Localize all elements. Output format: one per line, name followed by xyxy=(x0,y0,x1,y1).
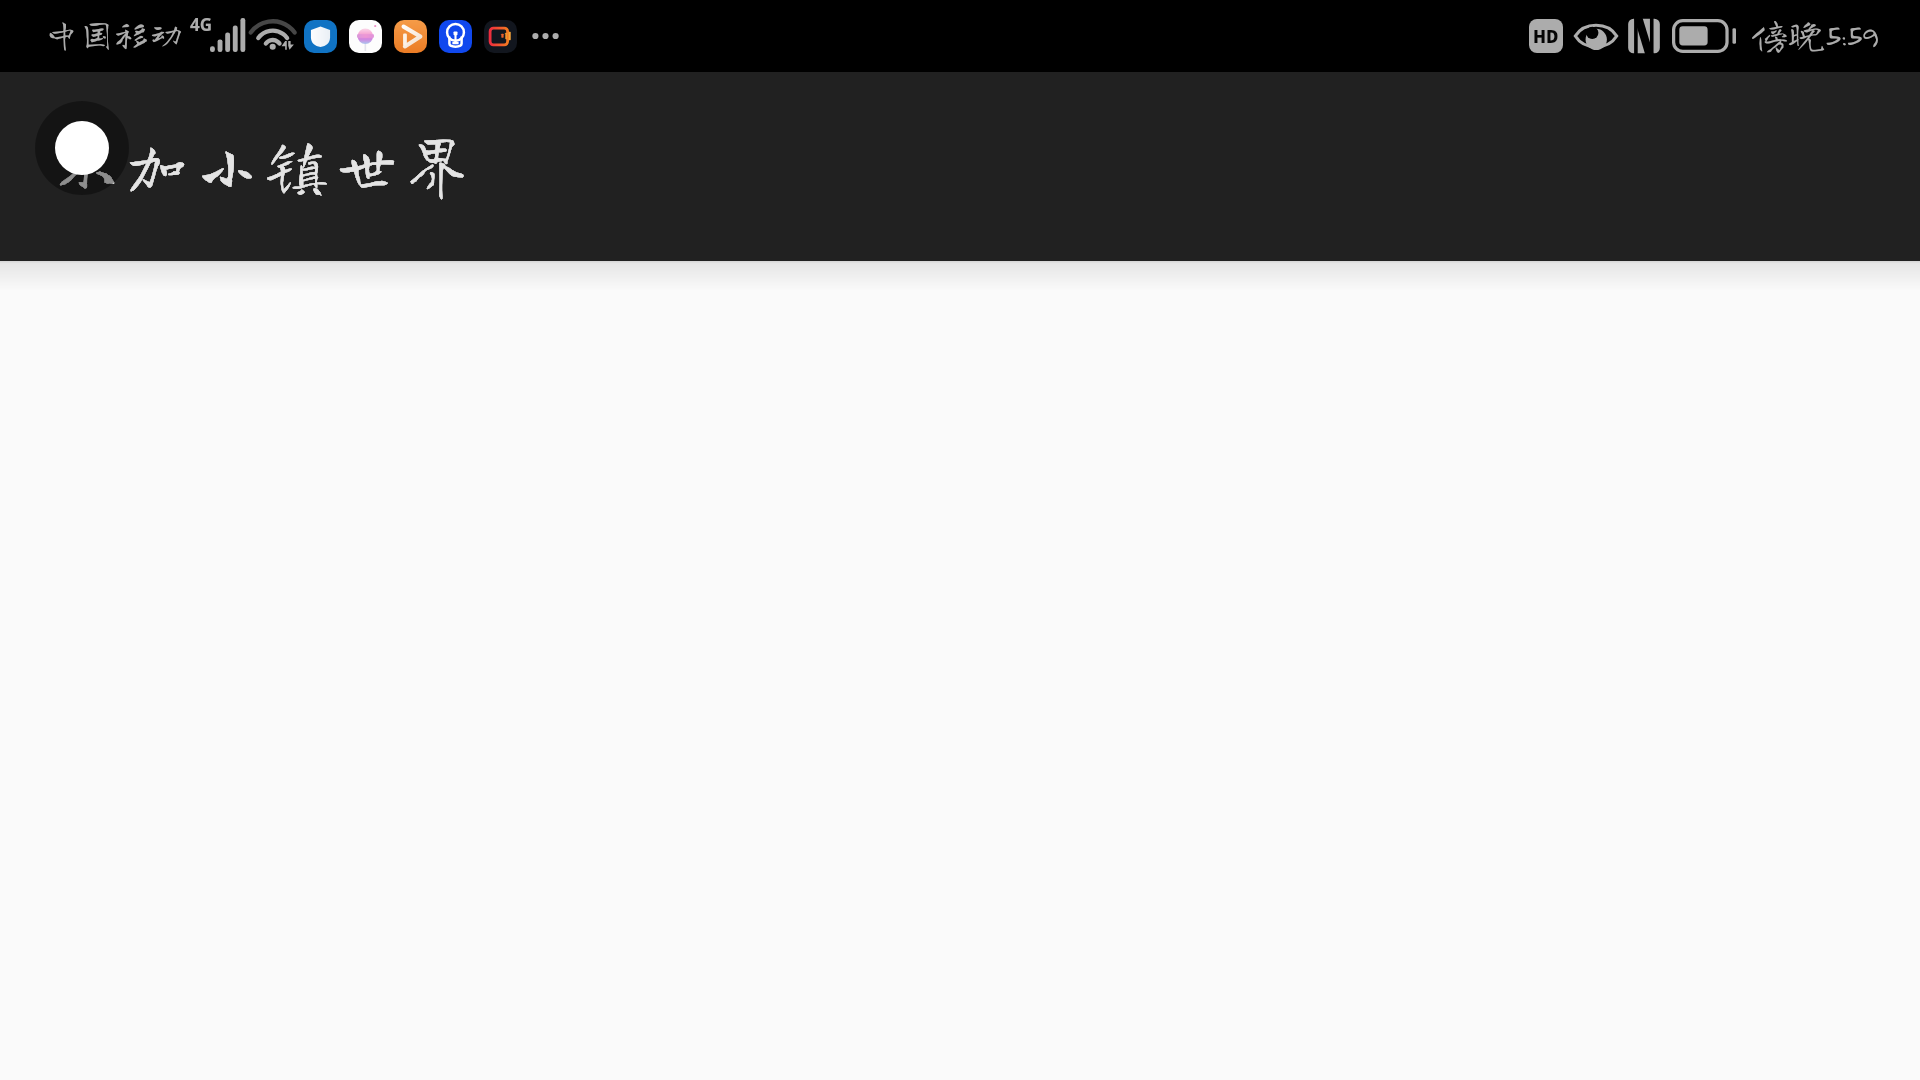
staticText: 不加小镇世界 xyxy=(56,133,477,195)
staticText: 不加小镇世界 xyxy=(56,133,477,195)
staticText: 傍晚5:59 xyxy=(1751,15,1878,52)
button[interactable]: Account avatar xyxy=(35,101,129,195)
staticText: HD xyxy=(1533,25,1559,48)
staticText: 中国移动 xyxy=(44,16,185,51)
button[interactable]: 不加小镇世界 xyxy=(35,95,475,201)
staticText: 4G xyxy=(190,13,213,36)
